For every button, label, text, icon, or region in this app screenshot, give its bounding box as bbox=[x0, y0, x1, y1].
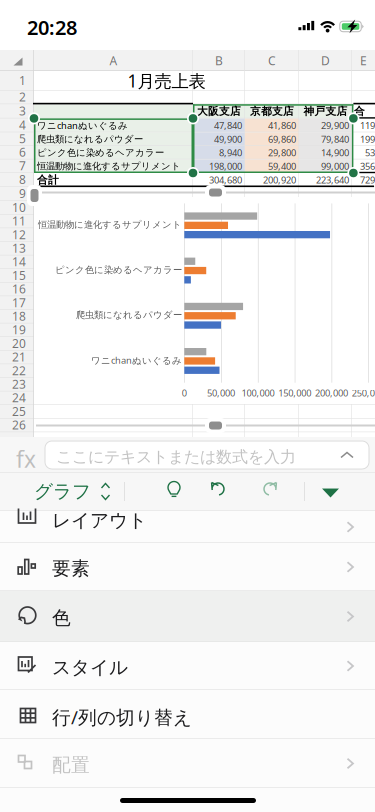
staticText: 合計 bbox=[37, 173, 59, 186]
staticText: 恒温動物に進化するサプリメント bbox=[37, 160, 181, 172]
staticText: ピンク色に染めるヘアカラー bbox=[55, 264, 182, 276]
button[interactable]: 要素 bbox=[0, 0, 375, 812]
button[interactable]: 行/列の切り替え bbox=[0, 0, 375, 812]
button[interactable]: Ideas bbox=[163, 477, 197, 507]
staticText: 223,640 bbox=[316, 174, 349, 186]
staticText: 7 bbox=[19, 158, 26, 174]
staticText: 16 bbox=[12, 281, 26, 297]
staticText: 22 bbox=[12, 362, 26, 378]
staticText: E bbox=[360, 52, 367, 68]
staticText: 250,000 bbox=[352, 387, 375, 399]
staticText: 京都支店 bbox=[250, 105, 294, 118]
staticText: 20 bbox=[12, 335, 26, 351]
staticText: 59,400 bbox=[268, 160, 296, 172]
staticText: 200,920 bbox=[263, 174, 296, 186]
staticText: 20:28 bbox=[27, 14, 77, 41]
staticText: 24 bbox=[12, 390, 26, 406]
staticText: 25 bbox=[12, 403, 26, 419]
staticText: 29,900 bbox=[321, 119, 349, 132]
staticText: 356 bbox=[360, 160, 375, 172]
staticText: 69,860 bbox=[268, 133, 296, 145]
staticText: 49,900 bbox=[214, 133, 242, 145]
staticText: 119 bbox=[360, 119, 375, 132]
staticText: 17 bbox=[12, 294, 26, 310]
staticText: B bbox=[215, 52, 223, 68]
staticText: グラフ bbox=[34, 480, 91, 503]
staticText: 爬虫類になれるパウダー bbox=[76, 309, 182, 321]
staticText: 729 bbox=[360, 174, 375, 186]
staticText: 8,940 bbox=[219, 146, 242, 159]
staticText: 23 bbox=[12, 376, 26, 392]
staticText: D bbox=[321, 52, 330, 68]
staticText: 18 bbox=[12, 308, 26, 324]
staticText: 21 bbox=[12, 349, 26, 365]
staticText: 199 bbox=[360, 133, 375, 145]
staticText: 大阪支店 bbox=[197, 105, 241, 118]
staticText: 14 bbox=[12, 254, 26, 270]
staticText: 14,900 bbox=[321, 146, 349, 159]
staticText: 99,000 bbox=[321, 160, 349, 172]
staticText: 色 bbox=[52, 606, 71, 629]
staticText: 26 bbox=[12, 417, 26, 433]
button[interactable]: Redo bbox=[258, 477, 292, 507]
button[interactable]: レイアウト bbox=[0, 0, 375, 812]
staticText: ピンク色に染めるヘアカラー bbox=[37, 147, 164, 158]
staticText: 12 bbox=[12, 226, 26, 242]
staticText: 198,000 bbox=[209, 160, 242, 172]
staticText: ワニchanぬいぐるみ bbox=[37, 119, 128, 132]
staticText: 200,000 bbox=[315, 387, 348, 399]
button[interactable]: Undo bbox=[206, 477, 240, 507]
staticText: 0 bbox=[182, 387, 187, 399]
staticText: 47,840 bbox=[214, 119, 242, 132]
staticText: 41,860 bbox=[268, 119, 296, 132]
staticText: 53 bbox=[365, 146, 375, 159]
staticText: fx bbox=[16, 444, 36, 474]
staticText: 79,840 bbox=[321, 133, 349, 145]
staticText: 9 bbox=[19, 185, 26, 201]
button[interactable]: 色 bbox=[0, 0, 375, 812]
button[interactable]: 配置 bbox=[0, 0, 375, 812]
staticText: ここにテキストまたは数式を入力 bbox=[56, 447, 296, 467]
staticText: 2 bbox=[19, 89, 26, 105]
staticText: A bbox=[109, 52, 117, 68]
staticText: 配置 bbox=[52, 753, 90, 776]
staticText: 行/列の切り替え bbox=[52, 704, 192, 729]
staticText: 100,000 bbox=[241, 387, 274, 399]
staticText: 304,680 bbox=[209, 174, 242, 186]
staticText: 3 bbox=[19, 103, 26, 119]
staticText: レイアウト bbox=[52, 509, 147, 532]
button[interactable]: スタイル bbox=[0, 0, 375, 812]
staticText: スタイル bbox=[52, 656, 128, 679]
staticText: 29,800 bbox=[268, 146, 296, 159]
staticText: 恒温動物に進化するサプリメント bbox=[38, 219, 182, 230]
staticText: 13 bbox=[12, 240, 26, 256]
staticText: 6 bbox=[19, 144, 26, 160]
staticText: ワニchanぬいぐるみ bbox=[91, 354, 182, 366]
staticText: 50,000 bbox=[207, 387, 235, 399]
staticText: 爬虫類になれるパウダー bbox=[37, 133, 143, 145]
staticText: 1 bbox=[19, 72, 26, 88]
staticText: 1月売上表 bbox=[127, 69, 205, 92]
staticText: 8 bbox=[19, 171, 26, 187]
staticText: 10 bbox=[12, 199, 26, 215]
staticText: 神戸支店 bbox=[303, 105, 347, 118]
staticText: 5 bbox=[19, 131, 26, 146]
staticText: 要素 bbox=[52, 557, 90, 580]
staticText: 19 bbox=[12, 322, 26, 338]
button[interactable]: ここにテキストまたは数式を入力 bbox=[45, 441, 369, 469]
button[interactable]: グラフ bbox=[22, 472, 122, 511]
staticText: 合 bbox=[354, 105, 365, 118]
button[interactable]: Hide ribbon bbox=[317, 477, 345, 507]
staticText: 4 bbox=[19, 117, 26, 133]
staticText: 150,000 bbox=[278, 387, 311, 399]
staticText: 15 bbox=[12, 267, 26, 283]
staticText: 11 bbox=[12, 213, 26, 229]
staticText: C bbox=[268, 52, 276, 68]
